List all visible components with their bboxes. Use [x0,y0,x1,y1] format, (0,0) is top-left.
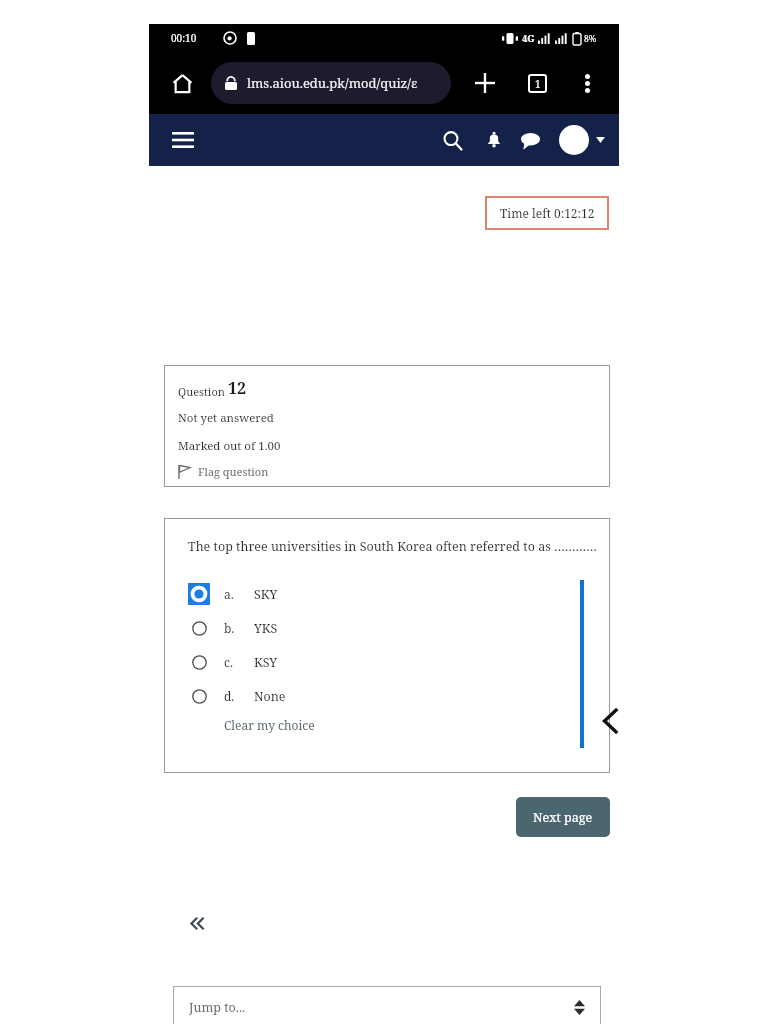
button[interactable]: User menu [559,125,605,155]
button[interactable]: Next page [516,797,610,837]
button[interactable]: a. [188,583,610,605]
button[interactable]: Jump to... [173,986,601,1024]
staticText: Jump to... [189,999,246,1016]
staticText: d. [224,688,235,704]
staticText: 8% [584,33,597,45]
staticText: b. [224,620,235,636]
staticText: a. [224,586,234,602]
staticText: YKS [254,620,278,637]
button[interactable]: lms.aiou.edu.pk/mod/quiz/ε [211,62,451,104]
button[interactable]: Home [161,62,203,104]
button[interactable]: Previous page [179,906,213,940]
staticText: None [254,688,286,705]
button[interactable]: Menu [165,122,201,158]
button[interactable]: Clear my choice [224,717,315,733]
staticText: Marked out of 1.00 [178,438,281,454]
staticText: Clear my choice [224,717,315,733]
staticText: 4G [522,32,535,45]
staticText: Question [178,384,228,399]
button[interactable]: New tab [465,63,505,103]
button[interactable]: d. [188,685,610,707]
staticText: KSY [254,654,278,671]
staticText: SKY [254,586,278,603]
staticText: 1 [535,77,541,91]
button[interactable]: Messages [513,123,547,157]
button[interactable]: More options [567,63,607,103]
button[interactable]: Time left 0:12:12 [485,196,609,230]
button[interactable]: Search [435,123,469,157]
staticText: Time left 0:12:12 [500,205,595,221]
staticText: Flag question [198,464,269,479]
staticText: Next page [533,809,593,826]
staticText: lms.aiou.edu.pk/mod/quiz/ε [247,74,418,92]
staticText: The top three universities in South Kore… [188,538,597,555]
button[interactable]: Previous [595,706,625,736]
button[interactable]: Flag question [178,464,269,479]
button[interactable]: c. [188,651,610,673]
staticText: Not yet answered [178,410,274,426]
staticText: 00:10 [171,31,197,45]
button[interactable]: Notifications [477,123,511,157]
button[interactable]: Tabs [517,63,557,103]
staticText: 12 [228,377,247,399]
button[interactable]: b. [188,617,610,639]
staticText: c. [224,654,233,670]
